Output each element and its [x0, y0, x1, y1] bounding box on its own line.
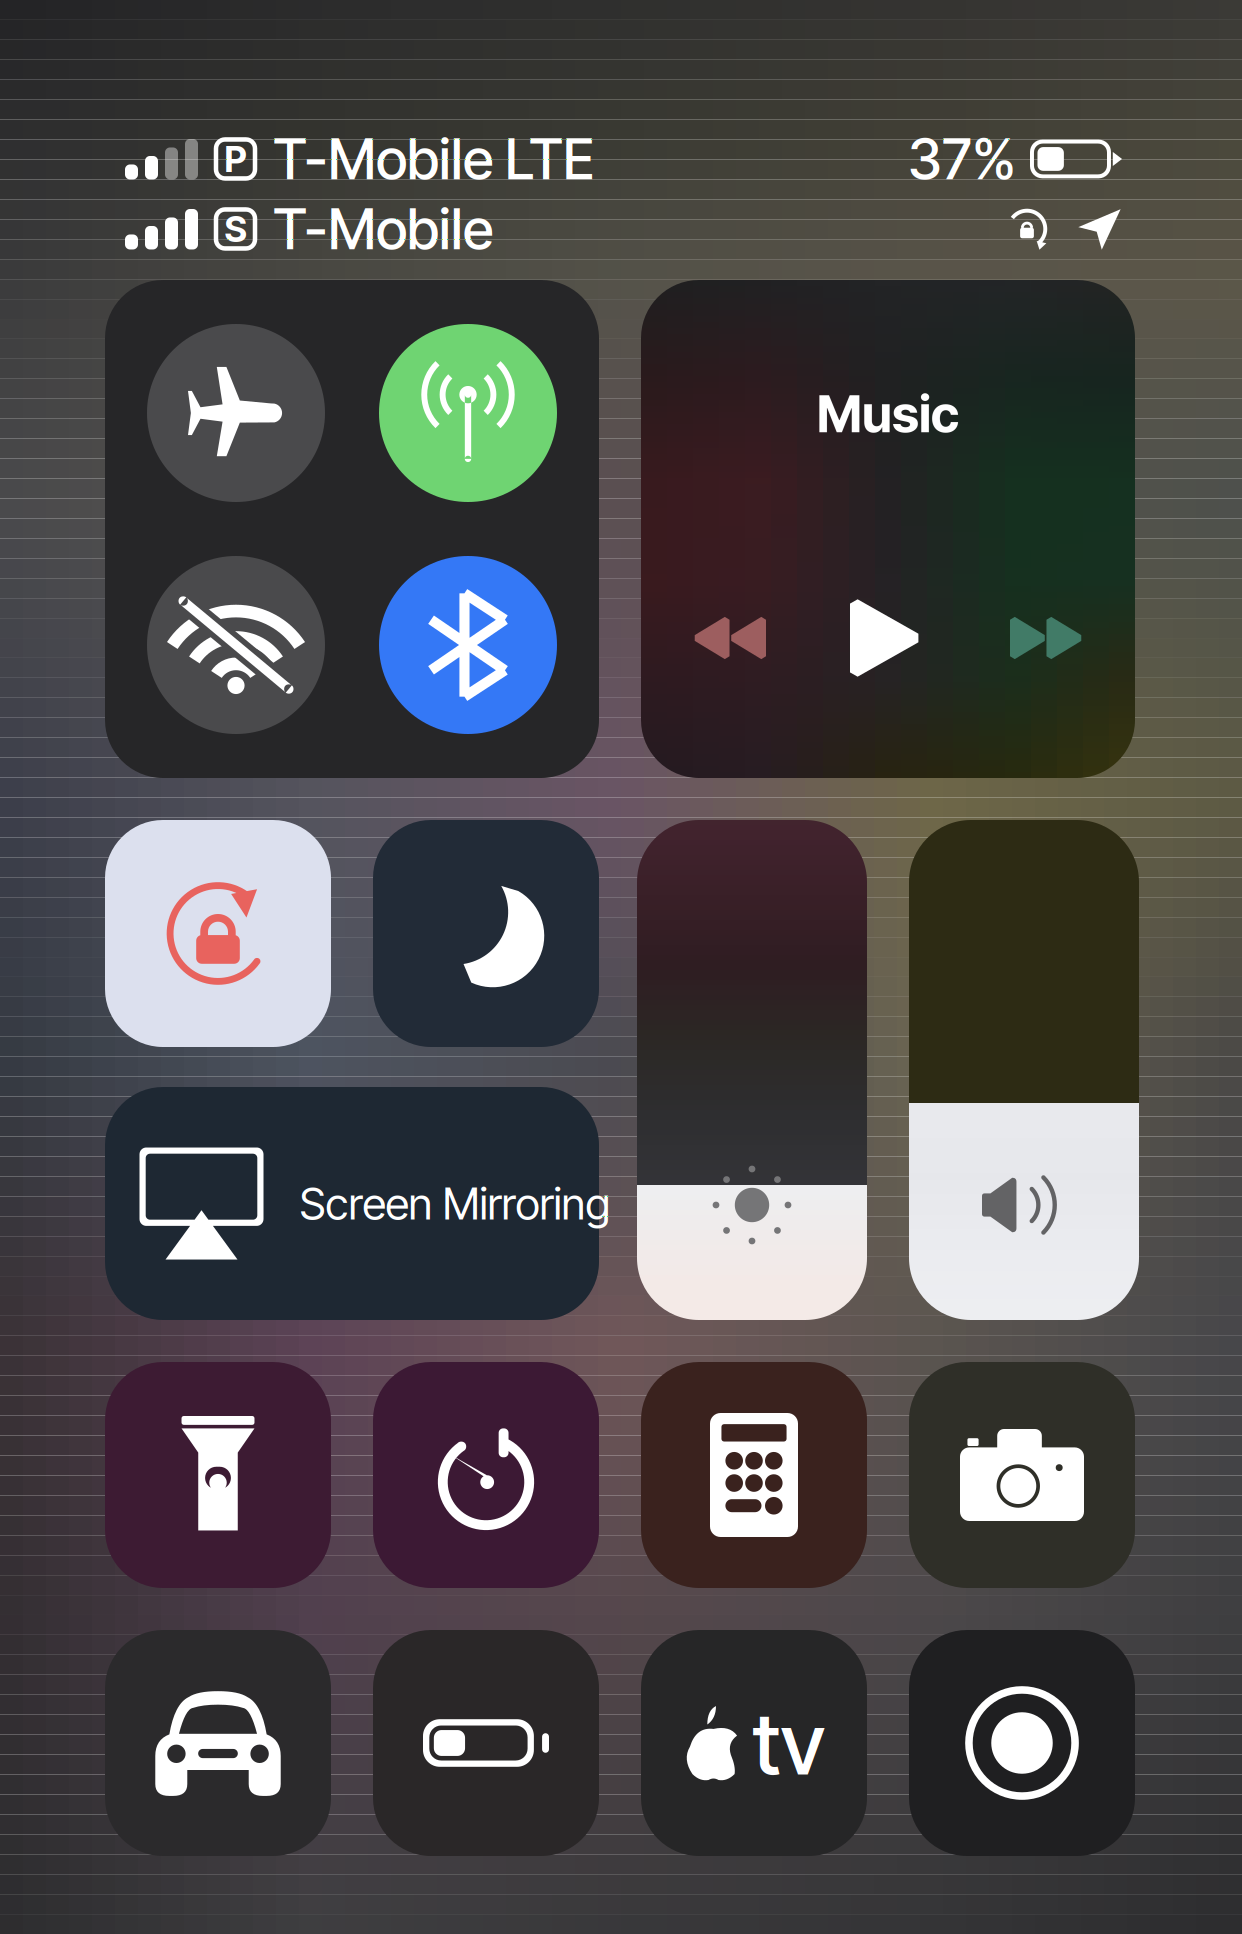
button[interactable]: Calculator	[641, 1362, 867, 1588]
button[interactable]: Volume	[909, 820, 1139, 1320]
button[interactable]: Cellular Data	[379, 324, 557, 502]
button[interactable]: Flashlight	[105, 1362, 331, 1588]
button[interactable]: Next track	[967, 583, 1129, 693]
button[interactable]: Airplane Mode	[147, 324, 325, 502]
staticText: P	[224, 138, 246, 180]
button[interactable]: Timer	[373, 1362, 599, 1588]
button[interactable]: Car	[105, 1630, 331, 1856]
button[interactable]: Camera	[909, 1362, 1135, 1588]
button[interactable]: Screen Mirroring	[105, 1087, 599, 1320]
staticText: Music	[817, 384, 959, 444]
button[interactable]: Screen Record	[909, 1630, 1135, 1856]
button[interactable]: Play	[833, 583, 943, 693]
staticText: Screen Mirroring	[299, 1177, 610, 1229]
button[interactable]: Bluetooth	[379, 556, 557, 734]
button[interactable]: Portrait Orientation Lock	[105, 820, 331, 1047]
staticText: T-Mobile	[273, 196, 493, 262]
button[interactable]: Apple TV Remote	[641, 1630, 867, 1856]
button[interactable]: Do Not Disturb	[373, 820, 599, 1047]
button[interactable]: Previous track	[647, 583, 809, 693]
staticText: tv	[752, 1693, 825, 1793]
button[interactable]: Wi-Fi	[147, 556, 325, 734]
staticText: S	[224, 208, 246, 250]
button[interactable]: Low Power Mode	[373, 1630, 599, 1856]
button[interactable]: Brightness	[637, 820, 867, 1320]
staticText: T-Mobile LTE	[273, 126, 594, 192]
staticText: 37%	[908, 126, 1016, 192]
